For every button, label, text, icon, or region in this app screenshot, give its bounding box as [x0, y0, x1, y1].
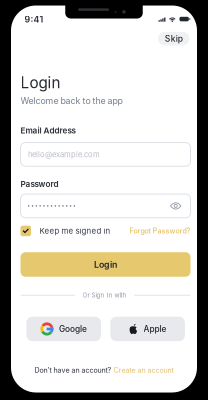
button[interactable]: Show password	[170, 202, 181, 210]
staticText: Login	[20, 74, 60, 92]
button[interactable]: Create an account	[113, 366, 173, 374]
staticText: hello@example.com	[28, 150, 100, 159]
button[interactable]: Keep me signed in	[20, 226, 110, 236]
staticText: Keep me signed in	[39, 226, 110, 236]
staticText: Create an account	[113, 366, 173, 374]
staticText: Apple	[143, 324, 166, 334]
button[interactable]: Forgot Password?	[129, 227, 190, 235]
staticText: Google	[59, 324, 87, 334]
button[interactable]: Skip	[158, 32, 189, 45]
staticText: Don't have an account?	[34, 366, 113, 374]
staticText: Password	[20, 179, 58, 189]
staticText: Login	[94, 259, 117, 270]
staticText: Skip	[165, 33, 183, 44]
staticText: 9:41	[24, 14, 43, 25]
button[interactable]: Apple	[110, 317, 185, 341]
staticText: Or Sign In with	[83, 291, 127, 299]
staticText: Welcome back to the app	[20, 95, 122, 106]
staticText: Email Address	[20, 125, 75, 135]
button[interactable]: Google	[26, 317, 101, 341]
staticText: Forgot Password?	[129, 227, 190, 235]
button[interactable]: Login	[20, 252, 190, 277]
